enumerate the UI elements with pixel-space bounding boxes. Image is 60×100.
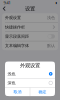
staticText: 设置 — [25, 5, 35, 12]
button[interactable]: 文本编辑字体 — [2, 41, 58, 50]
staticText: 外观设置 — [20, 62, 40, 69]
button[interactable]: 外观设置 — [2, 13, 58, 22]
staticText: 9:41 — [3, 0, 10, 5]
staticText: 浅色 — [7, 71, 15, 76]
button[interactable]: 快捷操作栏 — [2, 22, 58, 31]
staticText: 深色 — [7, 80, 15, 85]
button[interactable]: 深色 — [5, 78, 55, 87]
staticText: 文本编辑字体 — [5, 43, 29, 48]
button[interactable]: 返回 — [0, 6, 8, 12]
button[interactable]: 显示段落间距 — [48, 34, 55, 39]
staticText: 取消 — [13, 89, 21, 94]
staticText: 外观设置 — [5, 15, 21, 20]
button[interactable]: 浅色 — [5, 69, 55, 78]
staticText: 显示段落间距 — [5, 34, 29, 39]
button[interactable]: 显示段落间距 — [2, 32, 58, 41]
staticText: 浅色 — [47, 15, 55, 20]
staticText: 默认 — [47, 43, 55, 48]
button[interactable]: 确定 — [30, 88, 55, 96]
button[interactable]: 取消 — [5, 88, 30, 96]
staticText: 快捷操作栏 — [5, 25, 25, 29]
staticText: 确定 — [39, 89, 47, 94]
